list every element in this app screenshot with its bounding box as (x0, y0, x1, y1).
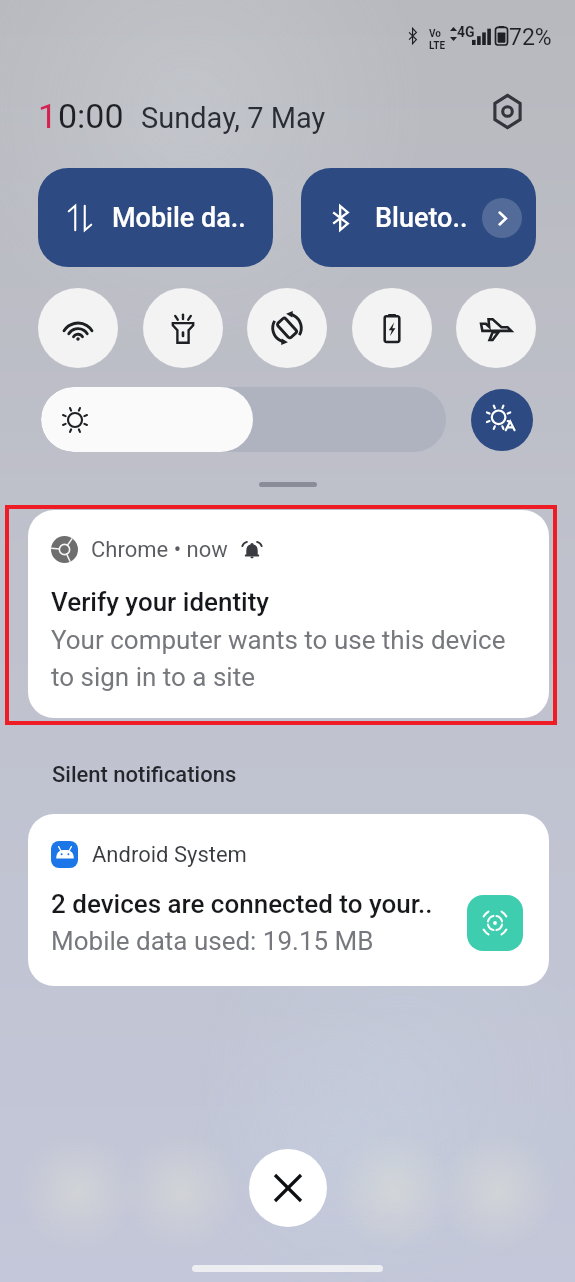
staticText: 0:00 (58, 96, 124, 136)
button[interactable]: Android System (28, 814, 549, 986)
staticText: Silent notifications (52, 762, 237, 788)
staticText: Verify your identity (51, 587, 270, 617)
button[interactable]: Wi-Fi (38, 288, 118, 368)
staticText: 2 devices are connected to your.. (51, 889, 433, 919)
staticText: Vo (429, 28, 441, 40)
staticText: Mobile da.. (112, 202, 246, 234)
button[interactable]: Auto rotate (247, 288, 327, 368)
button[interactable]: Auto brightness (471, 389, 533, 451)
staticText: Sunday, 7 May (141, 101, 326, 135)
button[interactable]: Blueto.. (301, 168, 536, 267)
button[interactable]: Power saving (352, 288, 432, 368)
button[interactable]: Mobile da.. (38, 168, 273, 267)
staticText: 1 (38, 96, 58, 136)
button[interactable]: Settings (484, 88, 530, 134)
staticText: Chrome • now (91, 537, 228, 563)
staticText: Blueto.. (375, 202, 468, 234)
button[interactable]: Close notification shade (249, 1149, 327, 1227)
button[interactable]: Flight mode (456, 288, 536, 368)
staticText: 72% (509, 24, 552, 51)
button[interactable]: Brightness (41, 387, 446, 452)
button[interactable]: Flashlight (143, 288, 223, 368)
staticText: Mobile data used: 19.15 MB (51, 926, 374, 956)
staticText: Android System (92, 842, 247, 868)
button[interactable]: Chrome • now (28, 510, 549, 718)
staticText: Your computer wants to use this device t… (51, 625, 506, 693)
staticText: LTE (429, 40, 446, 52)
staticText: 4G (457, 24, 475, 40)
button[interactable]: Bluetooth settings (482, 198, 522, 238)
